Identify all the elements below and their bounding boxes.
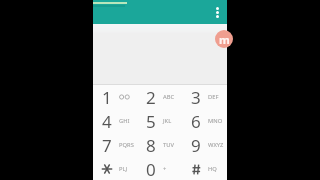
staticText: ABC: [163, 93, 175, 101]
staticText: PLJ: [119, 165, 128, 173]
button[interactable]: 2: [137, 85, 182, 109]
staticText: 2: [146, 86, 156, 108]
button[interactable]: 9: [182, 133, 227, 157]
staticText: m: [219, 32, 230, 47]
button[interactable]: 4: [93, 109, 137, 133]
staticText: DEF: [208, 93, 219, 101]
button[interactable]: 7: [93, 133, 137, 157]
staticText: 1: [102, 86, 112, 108]
staticText: JKL: [163, 117, 172, 125]
staticText: GHI: [119, 117, 130, 125]
staticText: 7: [102, 134, 112, 156]
staticText: PQRS: [119, 141, 132, 149]
staticText: 4: [102, 110, 112, 132]
button[interactable]: 3: [182, 85, 227, 109]
button[interactable]: 8: [137, 133, 182, 157]
staticText: +: [163, 165, 167, 173]
staticText: WXYZ: [208, 141, 221, 149]
staticText: 8: [146, 134, 156, 156]
staticText: 0: [146, 158, 156, 180]
staticText: 3: [191, 86, 201, 108]
button[interactable]: 1: [93, 85, 137, 109]
staticText: TUV: [163, 141, 174, 149]
button[interactable]: #: [182, 157, 227, 180]
staticText: 9: [191, 134, 201, 156]
staticText: MNO: [208, 117, 221, 125]
button[interactable]: 6: [182, 109, 227, 133]
staticText: HQ: [208, 165, 217, 173]
button[interactable]: *: [93, 157, 137, 180]
button[interactable]: 0: [137, 157, 182, 180]
button[interactable]: 5: [137, 109, 182, 133]
staticText: 5: [146, 110, 156, 132]
button[interactable]: More options: [210, 5, 224, 19]
staticText: 6: [191, 110, 201, 132]
